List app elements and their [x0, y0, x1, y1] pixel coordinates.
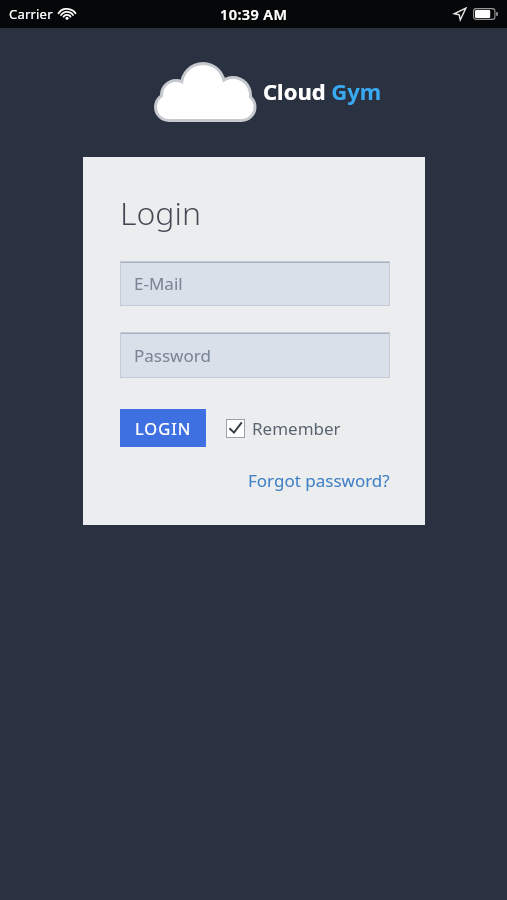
staticText: Carrier — [9, 5, 53, 23]
staticText: E-Mail — [134, 272, 183, 295]
staticText: 10:39 AM — [220, 4, 288, 24]
button[interactable]: LOGIN — [120, 409, 206, 447]
button[interactable]: Remember — [226, 417, 341, 440]
button[interactable]: Password — [120, 332, 390, 378]
button[interactable]: E-Mail — [120, 261, 390, 306]
staticText: Password — [134, 344, 211, 367]
staticText: Login — [120, 191, 201, 235]
staticText: LOGIN — [135, 417, 192, 439]
button[interactable]: Forgot password? — [248, 469, 390, 492]
staticText: Remember — [252, 417, 341, 440]
staticText: Cloud Gym — [263, 76, 382, 106]
